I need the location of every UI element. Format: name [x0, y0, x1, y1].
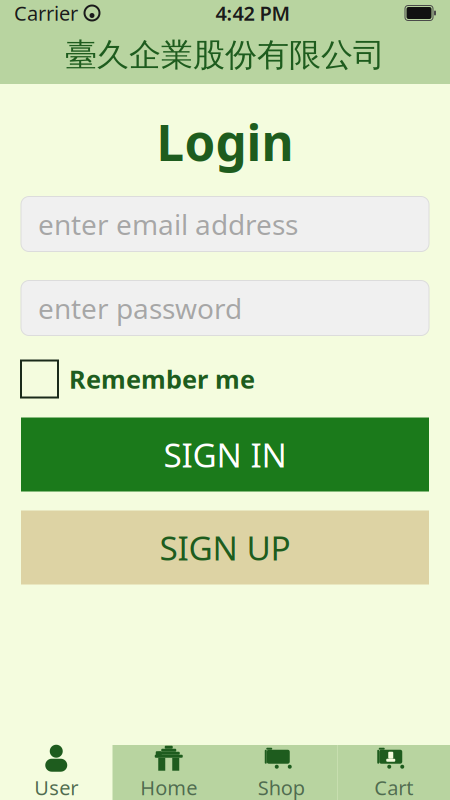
- staticText: Home: [140, 774, 197, 800]
- button[interactable]: Home: [112, 745, 225, 800]
- staticText: Cart: [374, 774, 413, 800]
- button[interactable]: Remember me: [21, 360, 429, 397]
- button[interactable]: Shop: [225, 745, 337, 800]
- staticText: Carrier: [14, 0, 78, 26]
- button[interactable]: SIGN IN: [21, 417, 429, 491]
- button[interactable]: SIGN UP: [21, 510, 429, 584]
- staticText: 臺久企業股份有限公司: [65, 35, 385, 75]
- staticText: User: [34, 774, 78, 800]
- button[interactable]: Cart: [337, 745, 450, 800]
- staticText: enter email address: [38, 205, 298, 243]
- staticText: enter password: [38, 289, 242, 327]
- staticText: Login: [156, 109, 293, 174]
- staticText: Shop: [258, 774, 305, 800]
- staticText: SIGN UP: [159, 525, 290, 570]
- staticText: Remember me: [69, 362, 255, 396]
- staticText: 4:42 PM: [215, 0, 290, 26]
- staticText: SIGN IN: [163, 432, 286, 477]
- button[interactable]: User: [0, 745, 112, 800]
